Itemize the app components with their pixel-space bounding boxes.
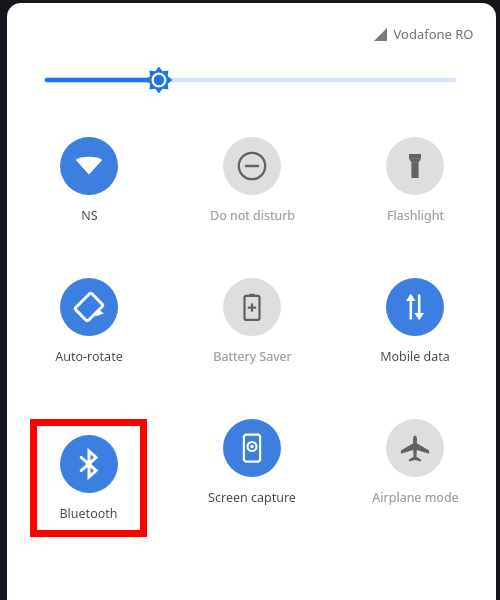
staticText: Bluetooth: [59, 505, 118, 522]
button[interactable]: Battery Saver: [198, 278, 306, 365]
button[interactable]: Bluetooth: [37, 435, 140, 522]
button[interactable]: Flashlight: [361, 137, 469, 224]
button[interactable]: Do not disturb: [198, 137, 306, 224]
button[interactable]: Screen capture: [198, 419, 306, 506]
staticText: Do not disturb: [210, 207, 295, 224]
staticText: Vodafone RO: [393, 25, 474, 43]
staticText: Flashlight: [387, 207, 444, 224]
staticText: Auto-rotate: [55, 348, 123, 365]
button[interactable]: Airplane mode: [361, 419, 469, 506]
staticText: Airplane mode: [372, 489, 459, 506]
button[interactable]: Auto-rotate: [35, 278, 143, 365]
staticText: Battery Saver: [213, 348, 292, 365]
staticText: Mobile data: [380, 348, 450, 365]
button[interactable]: Brightness: [47, 65, 454, 95]
staticText: Screen capture: [208, 489, 296, 506]
staticText: NS: [81, 207, 98, 224]
button[interactable]: Mobile data: [361, 278, 469, 365]
button[interactable]: NS: [35, 137, 143, 224]
